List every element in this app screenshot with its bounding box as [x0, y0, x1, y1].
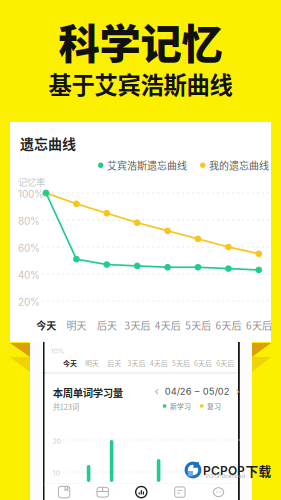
staticText: 复习: [207, 401, 221, 411]
staticText: 10: [53, 469, 60, 477]
staticText: 4天后: [155, 318, 181, 332]
staticText: 3天后: [127, 358, 145, 368]
button[interactable]: 计划: [161, 484, 199, 500]
staticText: 共123词: [53, 401, 79, 412]
staticText: 明天: [67, 318, 87, 332]
staticText: 4天后: [150, 358, 168, 368]
staticText: 后天: [97, 318, 117, 332]
button[interactable]: 我的: [199, 484, 238, 500]
staticText: 40%: [18, 269, 40, 281]
staticText: 记忆率: [18, 175, 45, 188]
staticText: 基于艾宾浩斯曲线: [48, 67, 232, 101]
button[interactable]: 统计: [122, 484, 161, 500]
staticText: 我的遗忘曲线: [209, 158, 269, 172]
button[interactable]: 单词本: [45, 484, 83, 500]
button[interactable]: 卡片: [83, 484, 122, 500]
staticText: 科学记忆: [58, 11, 222, 71]
staticText: ›: [236, 385, 240, 398]
staticText: 新学习: [170, 401, 191, 411]
staticText: 今天: [36, 318, 56, 332]
staticText: 下载: [245, 461, 271, 480]
staticText: 20%: [18, 296, 40, 308]
staticText: 明天: [85, 358, 99, 368]
staticText: ‹: [155, 385, 159, 398]
staticText: 后天: [107, 358, 121, 368]
staticText: 04/26 – 05/02: [165, 386, 230, 397]
staticText: 5天后: [185, 318, 211, 332]
staticText: 今天: [63, 358, 77, 368]
staticText: 80%: [18, 215, 40, 227]
staticText: 本周单词学习量: [53, 385, 123, 400]
staticText: 3天后: [124, 318, 150, 332]
staticText: 60%: [18, 242, 40, 254]
staticText: 5天后: [172, 358, 190, 368]
staticText: 6天后: [216, 318, 242, 332]
staticText: PCPOP Download: [206, 473, 245, 479]
staticText: 6天后: [194, 358, 212, 368]
staticText: 艾宾浩斯遗忘曲线: [107, 158, 187, 172]
staticText: 100%: [18, 188, 44, 200]
staticText: PCPOP: [203, 463, 245, 478]
staticText: 20: [53, 437, 61, 445]
staticText: 遗忘曲线: [20, 133, 76, 153]
staticText: 6天后: [246, 318, 272, 332]
staticText: 10%: [51, 347, 65, 355]
staticText: 6天后: [216, 358, 234, 368]
